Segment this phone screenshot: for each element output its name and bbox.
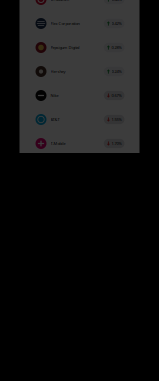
staticText: AT&T	[50, 117, 59, 122]
staticText: 1.55%	[111, 117, 121, 122]
staticText: Nike	[50, 93, 58, 98]
button[interactable]: AT&T	[19, 107, 139, 131]
staticText: T-Mobile	[50, 141, 65, 146]
staticText: 1.70%	[111, 141, 121, 146]
button[interactable]: Hershey	[19, 59, 139, 83]
button[interactable]: Nike	[19, 83, 139, 107]
staticText: 0.42%	[111, 21, 121, 26]
button[interactable]: Broadcom	[19, 0, 139, 11]
staticText: 0.44%	[111, 0, 121, 2]
button[interactable]: Pepsigum Digital	[19, 35, 139, 59]
button[interactable]: Flex Corporation	[19, 11, 139, 35]
staticText: Pepsigum Digital	[50, 45, 79, 50]
staticText: 0.67%	[111, 93, 121, 98]
staticText: 0.24%	[111, 69, 121, 74]
staticText: Broadcom	[50, 0, 69, 2]
staticText: Flex Corporation	[50, 21, 79, 26]
button[interactable]: T-Mobile	[19, 131, 139, 155]
staticText: Hershey	[50, 69, 65, 74]
staticText: 0.28%	[111, 45, 121, 50]
